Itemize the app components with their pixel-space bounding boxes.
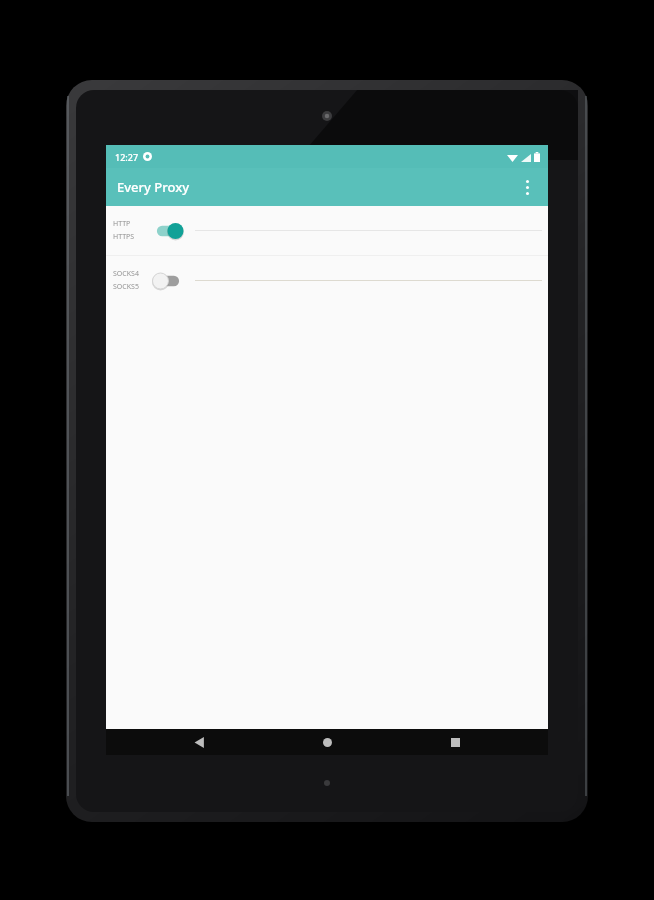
button[interactable]: Recent apps [420, 729, 490, 755]
button[interactable]: Toggle off [151, 268, 185, 294]
button[interactable]: Back [164, 729, 234, 755]
staticText: HTTPS [113, 232, 135, 242]
button[interactable]: More options [510, 170, 544, 204]
staticText: 12:27 [115, 151, 139, 163]
staticText: SOCKS5 [113, 282, 139, 292]
staticText: Every Proxy [117, 178, 190, 196]
button[interactable]: SOCKS4 [106, 256, 548, 305]
button[interactable]: Toggle on [151, 218, 185, 244]
staticText: HTTP [113, 219, 131, 229]
button[interactable]: Home [292, 729, 362, 755]
button[interactable]: HTTP [106, 206, 548, 255]
staticText: SOCKS4 [113, 269, 139, 279]
